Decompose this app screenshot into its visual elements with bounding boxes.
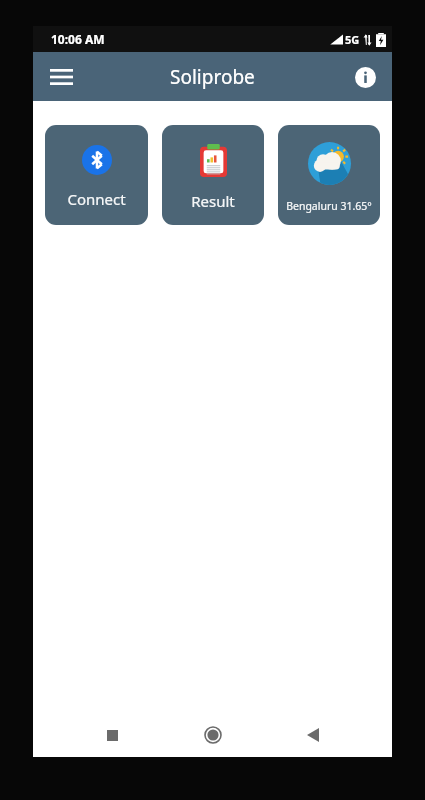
staticText: Connect [67,189,126,209]
button[interactable]: App info [348,60,382,94]
button[interactable]: Recent apps [93,716,131,754]
staticText: 10:06 AM [51,31,105,47]
button[interactable]: Result [162,125,264,225]
button[interactable]: Weather [278,125,380,225]
staticText: Soliprobe [170,64,255,90]
button[interactable]: Connect [45,125,148,225]
staticText: 5G [345,32,360,47]
staticText: Result [191,191,235,211]
staticText: Bengaluru 31.65° [286,199,372,213]
button[interactable]: Back [294,716,332,754]
button[interactable]: Open navigation menu [41,57,81,97]
button[interactable]: Home [194,716,232,754]
